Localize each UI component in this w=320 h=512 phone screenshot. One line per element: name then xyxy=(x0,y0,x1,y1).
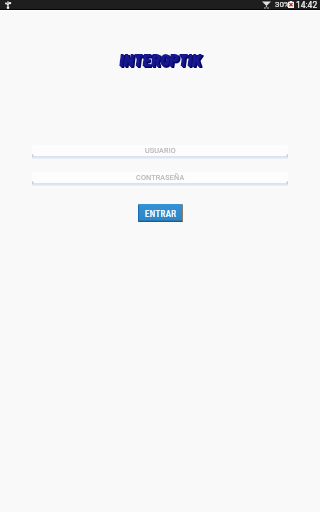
staticText: 30% xyxy=(275,0,290,9)
staticText: INTEROPTIK xyxy=(121,51,204,72)
staticText: ENTRAR xyxy=(145,208,177,219)
button[interactable]: ENTRAR xyxy=(138,204,183,222)
staticText: CONTRASEÑA xyxy=(136,173,185,181)
other: USB connected xyxy=(5,1,11,9)
other: Wi-Fi signal xyxy=(262,1,271,9)
staticText: INTEROPTIK xyxy=(120,50,203,71)
staticText: 14:42 xyxy=(296,0,318,10)
staticText: INTEROPTIK xyxy=(119,49,202,70)
other: Battery xyxy=(288,1,294,8)
staticText: INTEROPTIK xyxy=(121,50,204,71)
button[interactable]: CONTRASEÑA xyxy=(32,172,288,185)
staticText: USUARIO xyxy=(145,146,176,154)
button[interactable]: USUARIO xyxy=(32,145,288,158)
